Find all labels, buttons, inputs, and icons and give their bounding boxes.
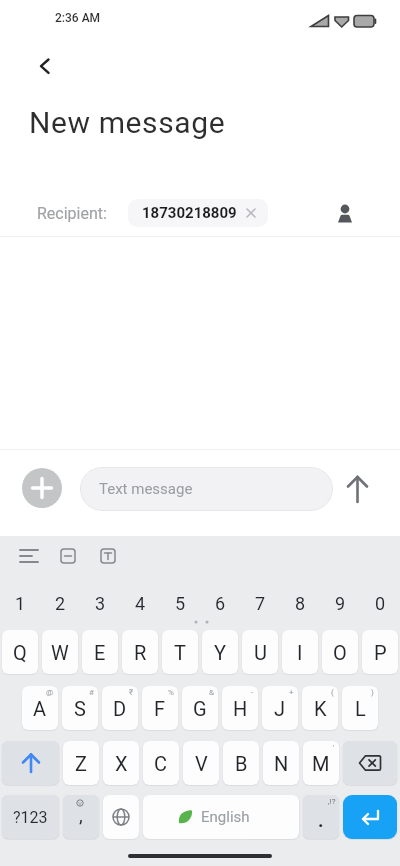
staticText: A bbox=[33, 697, 47, 720]
staticText: N bbox=[274, 752, 289, 775]
staticText: V bbox=[195, 752, 208, 775]
staticText: 0 bbox=[375, 593, 386, 614]
staticText: 6 bbox=[215, 593, 226, 614]
staticText: P bbox=[374, 641, 387, 664]
staticText: I bbox=[297, 641, 303, 664]
staticText: & bbox=[209, 688, 214, 697]
staticText: 2:36 AM bbox=[55, 11, 101, 25]
staticText: ' bbox=[333, 743, 335, 752]
staticText: - bbox=[251, 688, 254, 697]
staticText: ,!? bbox=[328, 797, 336, 806]
staticText: % bbox=[168, 688, 174, 697]
staticText: D bbox=[113, 697, 127, 720]
staticText: , bbox=[79, 804, 83, 826]
staticText: 5 bbox=[175, 593, 186, 614]
staticText: 3 bbox=[95, 593, 106, 614]
staticText: Text message bbox=[99, 480, 193, 498]
staticText: B bbox=[235, 752, 248, 775]
staticText: ) bbox=[371, 688, 374, 697]
staticText: ?123 bbox=[13, 808, 48, 827]
staticText: F bbox=[154, 697, 166, 720]
staticText: W bbox=[51, 641, 69, 664]
staticText: + bbox=[289, 688, 294, 697]
staticText: S bbox=[74, 697, 86, 720]
staticText: H bbox=[233, 697, 248, 720]
staticText: 8 bbox=[295, 593, 306, 614]
staticText: K bbox=[314, 697, 327, 720]
staticText: 7 bbox=[255, 593, 266, 614]
staticText: @ bbox=[46, 688, 54, 697]
staticText: R bbox=[134, 641, 147, 664]
staticText: J bbox=[274, 697, 286, 720]
staticText: 2 bbox=[55, 593, 66, 614]
staticText: 1 bbox=[15, 593, 26, 614]
staticText: ( bbox=[331, 688, 334, 697]
staticText: C bbox=[154, 752, 168, 775]
staticText: Z bbox=[75, 752, 87, 775]
staticText: L bbox=[355, 697, 366, 720]
staticText: New message bbox=[29, 105, 226, 140]
staticText: G bbox=[193, 697, 207, 720]
staticText: Recipient: bbox=[37, 204, 107, 223]
staticText: ₹ bbox=[129, 688, 134, 697]
staticText: 9 bbox=[335, 593, 346, 614]
staticText: Y bbox=[214, 641, 227, 664]
staticText: Q bbox=[13, 641, 27, 664]
staticText: # bbox=[89, 688, 94, 697]
staticText: T bbox=[174, 641, 186, 664]
staticText: English bbox=[201, 808, 250, 826]
staticText: O bbox=[333, 641, 347, 664]
staticText: . bbox=[318, 809, 324, 831]
staticText: X bbox=[115, 752, 128, 775]
staticText: M bbox=[312, 752, 330, 775]
staticText: 4 bbox=[135, 593, 146, 614]
staticText: 18730218809 bbox=[142, 204, 237, 222]
staticText: U bbox=[254, 641, 267, 664]
staticText: E bbox=[94, 641, 106, 664]
